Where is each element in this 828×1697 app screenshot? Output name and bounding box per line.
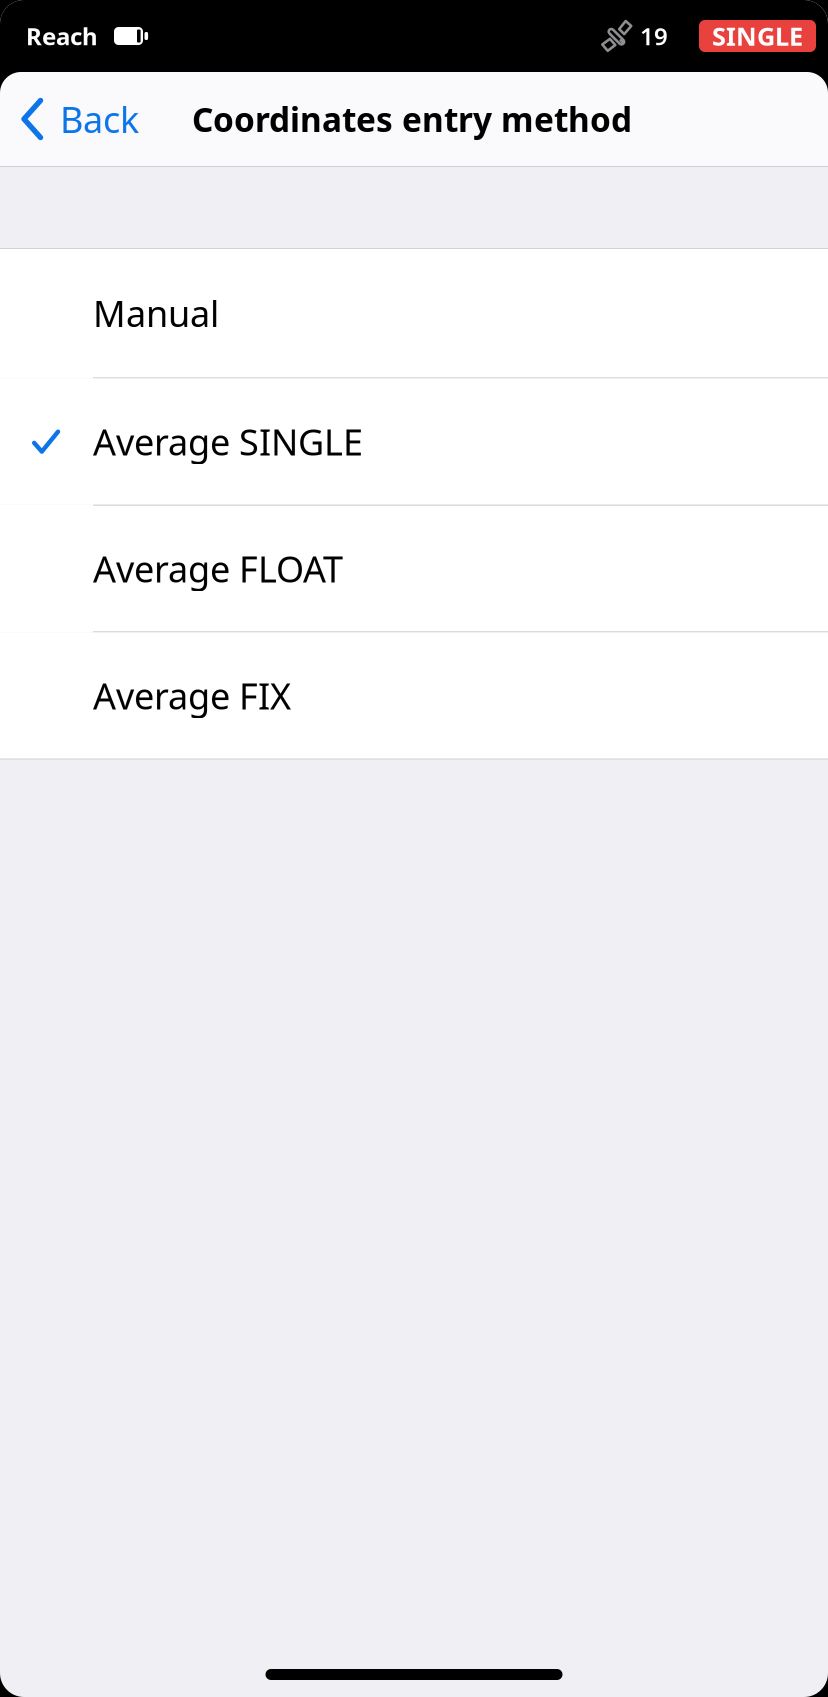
button[interactable]: Average SINGLE: [0, 378, 828, 504]
staticText: Average SINGLE: [93, 418, 363, 465]
button[interactable]: Manual: [0, 249, 828, 377]
button[interactable]: Average FLOAT: [0, 506, 828, 631]
staticText: Average FIX: [93, 672, 291, 719]
staticText: Average FLOAT: [93, 545, 343, 592]
staticText: Reach: [26, 20, 98, 52]
button[interactable]: Back: [0, 72, 151, 166]
button[interactable]: Average FIX: [0, 632, 828, 758]
staticText: Coordinates entry method: [192, 97, 632, 141]
staticText: SINGLE: [712, 19, 803, 53]
staticText: Manual: [93, 289, 219, 337]
staticText: 19: [640, 20, 668, 52]
staticText: Back: [60, 95, 139, 143]
